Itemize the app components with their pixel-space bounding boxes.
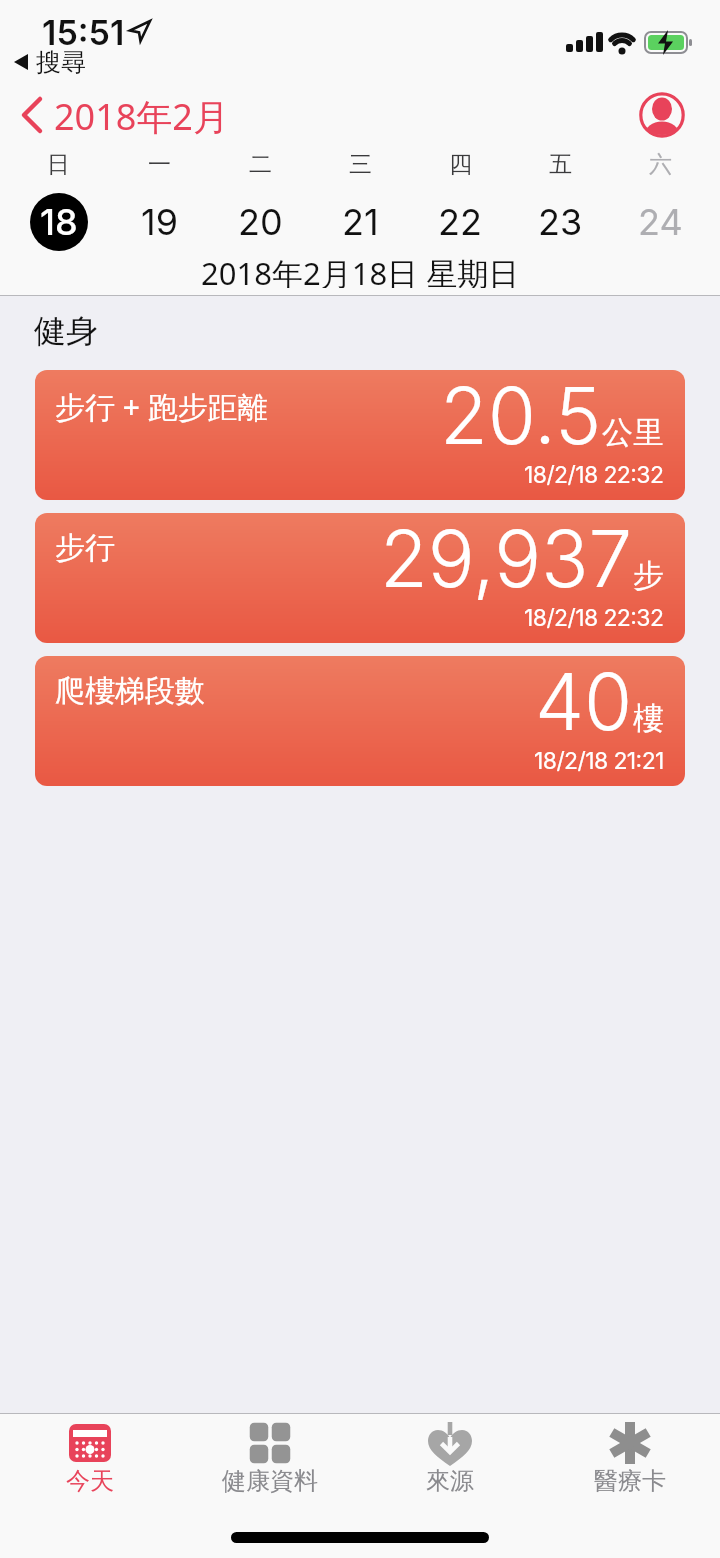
staticText: 來源 <box>426 1466 474 1496</box>
staticText: 日 <box>47 150 70 179</box>
staticText: 五 <box>549 150 572 179</box>
staticText: 六 <box>649 150 672 179</box>
staticText: 步 <box>633 556 664 595</box>
button[interactable]: 醫療卡 <box>540 1414 720 1558</box>
button[interactable]: 步行 <box>35 513 685 643</box>
button[interactable]: 23 <box>538 200 583 244</box>
staticText: 樓 <box>633 699 664 738</box>
staticText: 健身 <box>34 311 98 351</box>
button[interactable]: 18 <box>30 193 88 251</box>
staticText: 18 <box>40 200 78 244</box>
staticText: 三 <box>349 150 372 179</box>
staticText: 步行 + 跑步距離 <box>55 386 268 427</box>
staticText: 一 <box>148 150 171 179</box>
staticText: 搜尋 <box>36 47 86 78</box>
button[interactable]: 24 <box>638 200 683 244</box>
button[interactable] <box>639 92 685 138</box>
staticText: 爬樓梯段數 <box>55 672 205 710</box>
button[interactable]: 20 <box>238 200 283 244</box>
staticText: 18/2/18 21:21 <box>534 747 664 775</box>
staticText: 40 <box>535 656 633 748</box>
staticText: 醫療卡 <box>594 1466 666 1496</box>
button[interactable]: 來源 <box>360 1414 540 1558</box>
staticText: 2018年2月 <box>54 92 229 138</box>
staticText: 健康資料 <box>222 1466 318 1496</box>
button[interactable]: 22 <box>438 200 482 244</box>
button[interactable]: 步行 + 跑步距離 <box>35 370 685 500</box>
staticText: 29,937 <box>380 513 633 605</box>
button[interactable]: 爬樓梯段數 <box>35 656 685 786</box>
staticText: 步行 <box>55 529 115 567</box>
staticText: 15:51 <box>42 12 125 53</box>
staticText: 18/2/18 22:32 <box>524 604 664 632</box>
staticText: 20.5 <box>440 370 602 462</box>
staticText: 2018年2月18日 星期日 <box>201 252 520 288</box>
button[interactable]: 2018年2月 <box>18 92 229 138</box>
staticText: 二 <box>249 150 272 179</box>
button[interactable]: 21 <box>342 200 379 244</box>
staticText: 四 <box>449 150 472 179</box>
button[interactable]: 今天 <box>0 1414 180 1558</box>
staticText: 公里 <box>602 413 664 452</box>
staticText: 今天 <box>66 1466 114 1496</box>
staticText: 18/2/18 22:32 <box>524 461 664 489</box>
button[interactable]: 健康資料 <box>180 1414 360 1558</box>
button[interactable]: 19 <box>141 200 178 244</box>
